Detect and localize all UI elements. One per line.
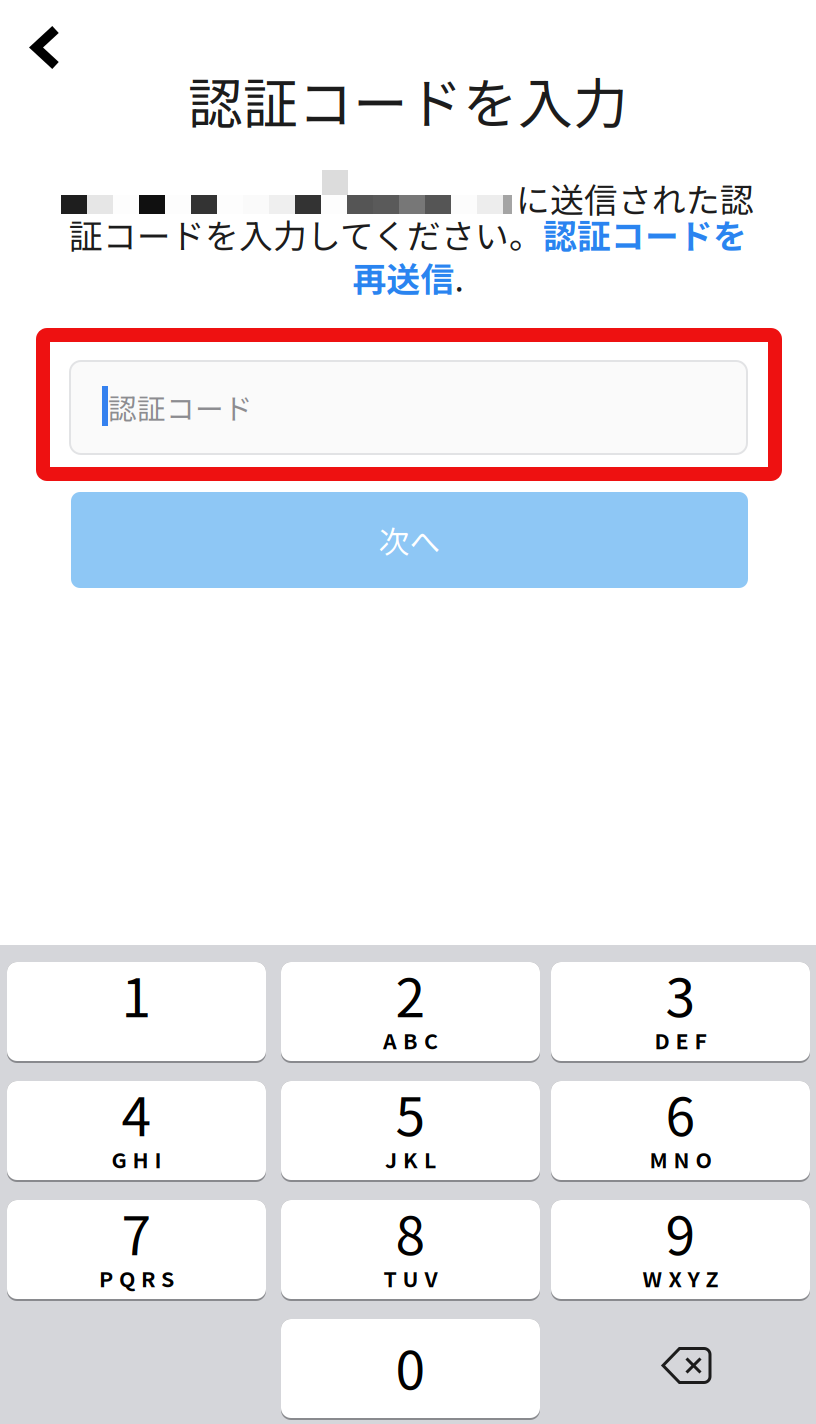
staticText: WXYZ xyxy=(642,1263,718,1293)
staticText: 0 xyxy=(395,1328,425,1405)
staticText: . xyxy=(454,253,463,301)
staticText: 再送信 xyxy=(352,253,454,301)
staticText: 7 xyxy=(121,1193,151,1271)
button[interactable]: 9 xyxy=(551,1199,810,1300)
staticText: 認証コードを入力 xyxy=(188,60,628,140)
staticText: 1 xyxy=(121,955,151,1033)
staticText: 証コードを入力してください。 xyxy=(69,210,543,258)
staticText: 次へ xyxy=(378,518,440,562)
staticText: DEF xyxy=(654,1025,706,1055)
button[interactable]: 2 xyxy=(281,961,540,1062)
staticText: PQRS xyxy=(99,1263,174,1293)
button[interactable]: 7 xyxy=(7,1199,266,1300)
staticText: に送信された認 xyxy=(516,174,754,222)
button[interactable]: 再送信 xyxy=(352,253,454,301)
staticText: 認証コード xyxy=(108,386,253,428)
button[interactable]: 認証コードを xyxy=(543,210,747,258)
staticText: ABC xyxy=(383,1025,438,1055)
button[interactable]: 8 xyxy=(281,1199,540,1300)
staticText: 8 xyxy=(395,1193,425,1271)
staticText: 6 xyxy=(665,1074,695,1152)
button[interactable]: Delete xyxy=(551,1318,810,1419)
staticText: 認証コードを xyxy=(543,210,747,258)
button[interactable]: Back xyxy=(10,8,84,88)
button[interactable]: 0 xyxy=(281,1318,540,1419)
button[interactable]: 3 xyxy=(551,961,810,1062)
staticText: 5 xyxy=(395,1074,425,1152)
staticText: MNO xyxy=(649,1144,711,1174)
staticText: TUV xyxy=(383,1263,437,1293)
staticText: GHI xyxy=(111,1144,161,1174)
button[interactable]: 4 xyxy=(7,1080,266,1181)
staticText: JKL xyxy=(385,1144,436,1174)
staticText: 9 xyxy=(665,1193,695,1271)
staticText: 4 xyxy=(121,1074,151,1152)
button[interactable]: 1 xyxy=(7,961,266,1062)
staticText: 2 xyxy=(395,955,425,1033)
button[interactable]: 6 xyxy=(551,1080,810,1181)
button[interactable] xyxy=(70,361,747,454)
button[interactable]: 5 xyxy=(281,1080,540,1181)
staticText: 3 xyxy=(665,955,695,1033)
button[interactable]: 次へ xyxy=(71,492,748,588)
